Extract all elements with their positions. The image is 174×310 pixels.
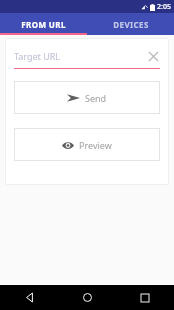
button[interactable]: Recents [116, 285, 174, 310]
button[interactable]: Preview [14, 128, 160, 161]
button[interactable]: DEVICES [87, 13, 174, 35]
staticText: 2:05 [157, 2, 171, 12]
staticText: Target URL [14, 50, 146, 62]
button[interactable]: Send [14, 81, 160, 114]
button[interactable]: Clear [146, 49, 160, 63]
staticText: Send [85, 92, 107, 104]
staticText: DEVICES [113, 19, 149, 30]
staticText: Preview [79, 139, 112, 151]
staticText: FROM URL [21, 19, 66, 30]
button[interactable]: Back [0, 285, 58, 310]
button[interactable]: FROM URL [0, 13, 87, 35]
button[interactable]: Home [58, 285, 116, 310]
